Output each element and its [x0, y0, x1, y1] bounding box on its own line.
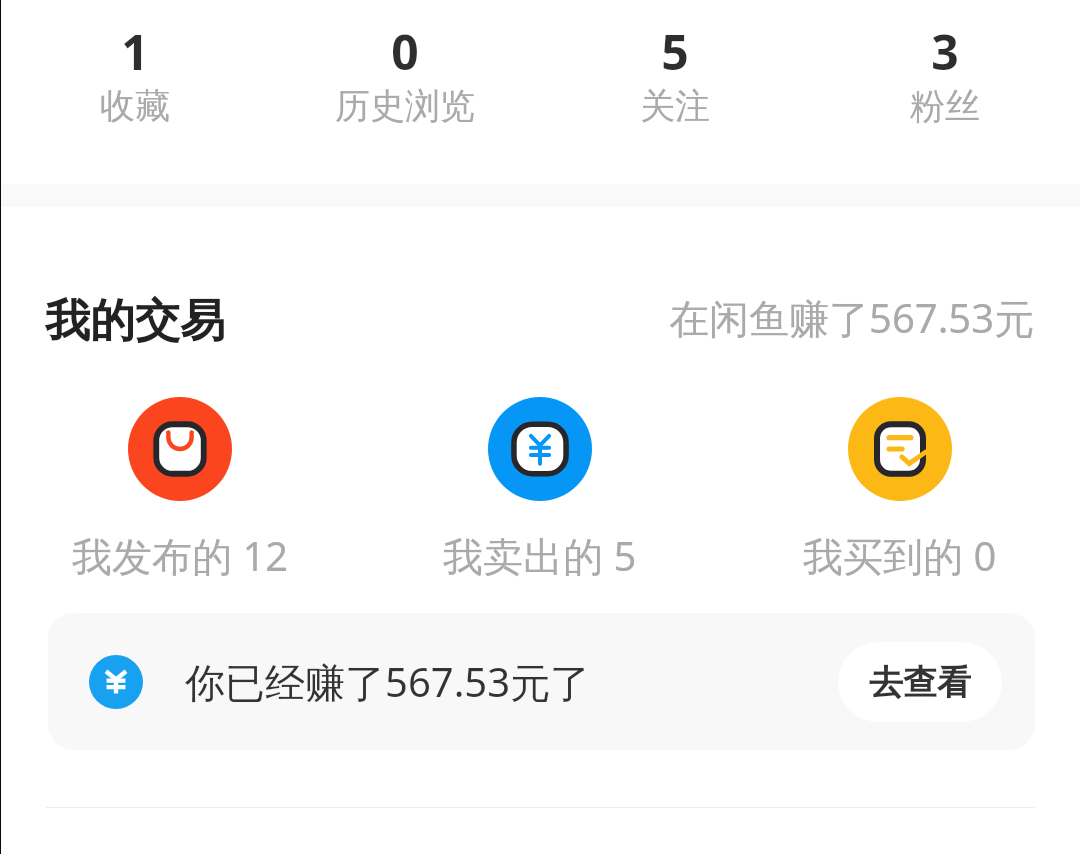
button[interactable]: 1 — [0, 0, 270, 185]
staticText: 3 — [931, 19, 959, 84]
staticText: 0 — [391, 19, 419, 84]
staticText: 粉丝 — [910, 84, 980, 128]
button[interactable]: 去查看 — [838, 642, 1002, 722]
staticText: 关注 — [640, 84, 710, 128]
other: 我发布的 — [128, 397, 232, 501]
button[interactable]: 3 — [810, 0, 1080, 185]
button[interactable]: 0 — [270, 0, 540, 185]
staticText: 收藏 — [100, 84, 170, 128]
other: 收益 — [89, 655, 143, 709]
button[interactable]: 5 — [540, 0, 810, 185]
staticText: 去查看 — [869, 661, 971, 704]
staticText: 我买到的 0 — [803, 528, 997, 583]
staticText: 1 — [121, 19, 149, 84]
button[interactable]: 收益 — [48, 613, 1035, 750]
staticText: 我卖出的 5 — [443, 528, 637, 583]
other: 我买到的 — [848, 397, 952, 501]
staticText: 我发布的 12 — [72, 528, 289, 583]
button[interactable]: 我买到的 — [720, 397, 1080, 583]
button[interactable]: 在闲鱼赚了567.53元 — [669, 290, 1035, 345]
other: 我卖出的 — [488, 397, 592, 501]
staticText: 历史浏览 — [335, 84, 475, 128]
staticText: 5 — [661, 19, 689, 84]
staticText: 我的交易 — [45, 293, 225, 350]
staticText: 你已经赚了567.53元了 — [185, 654, 591, 709]
button[interactable]: 我卖出的 — [360, 397, 720, 583]
button[interactable]: 我发布的 — [0, 397, 360, 583]
